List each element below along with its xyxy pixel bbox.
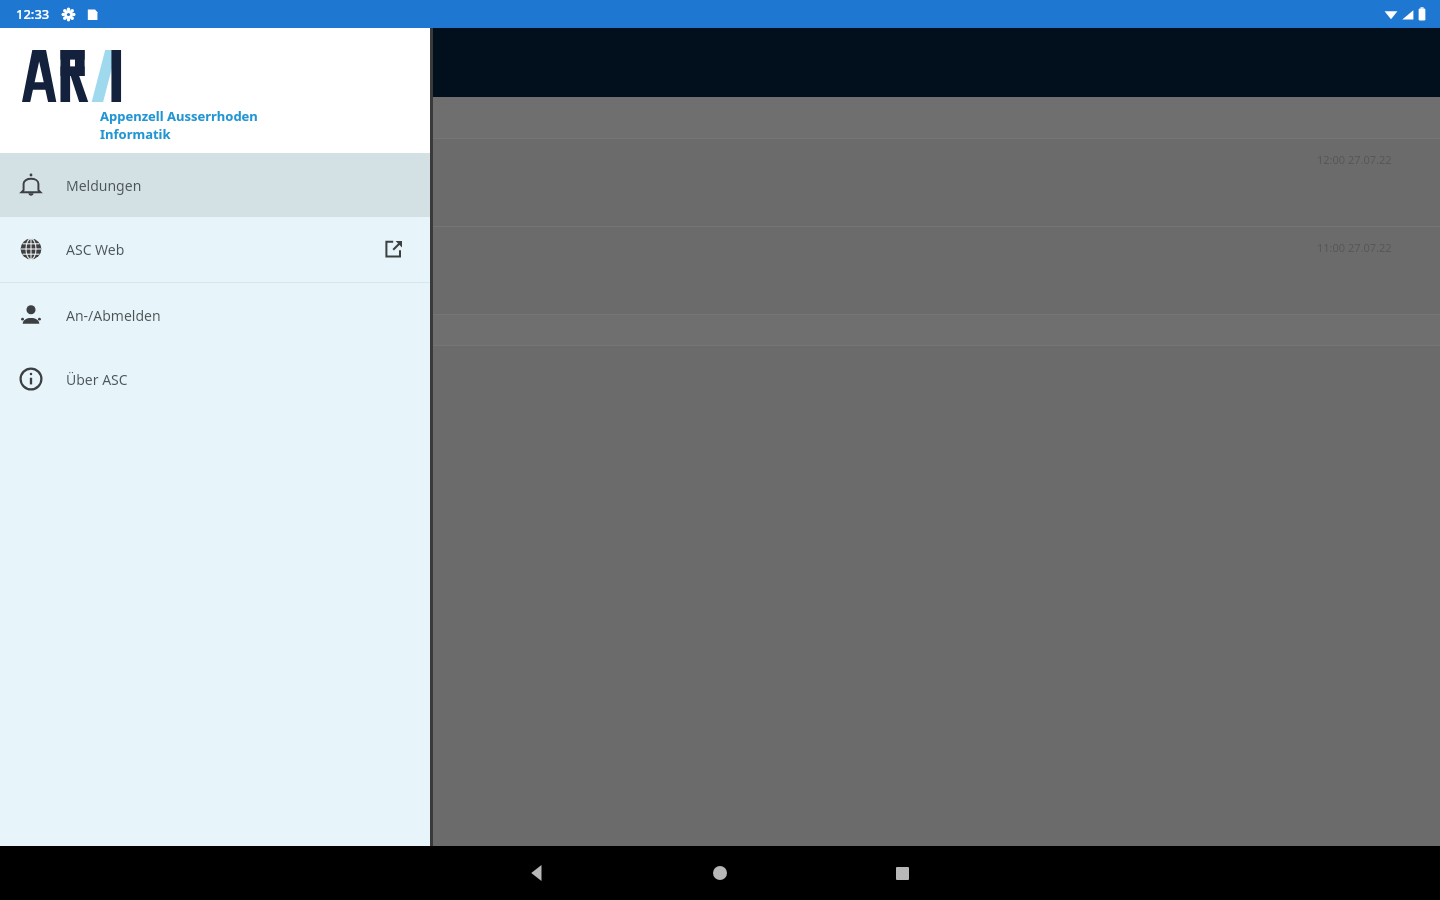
staticText: 12:33 [16,5,50,23]
button[interactable]: Über ASC [0,347,430,411]
button[interactable]: An-/Abmelden [0,283,430,347]
button[interactable]: 12:00 27.07.22 [0,139,1440,226]
button[interactable]: Meldungen [0,153,430,217]
staticText: 12:00 27.07.22 [1317,152,1392,167]
button[interactable]: Recent apps [878,849,926,897]
staticText: 11:00 27.07.22 [1317,240,1392,255]
button[interactable]: ASC Web [0,217,430,281]
staticText: Über ASC [66,370,128,389]
staticText: Meldungen [66,176,142,195]
staticText: Informatik [100,125,171,143]
staticText: Appenzell Ausserrhoden [100,107,258,125]
button[interactable]: Back [513,849,561,897]
button[interactable]: Home [696,849,744,897]
other: Open in new window [384,239,404,259]
staticText: ASC Web [66,240,125,259]
staticText: An-/Abmelden [66,306,161,325]
button[interactable]: 11:00 27.07.22 [0,227,1440,314]
